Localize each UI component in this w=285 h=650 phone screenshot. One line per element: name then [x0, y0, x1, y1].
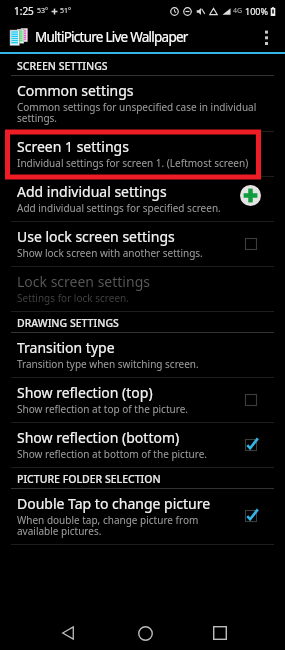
button[interactable]: Common settings — [0, 76, 285, 132]
staticText: Individual settings for screen 1. (Leftm… — [17, 156, 249, 170]
staticText: Transition type — [17, 338, 115, 357]
staticText: Common settings for unspecified case in … — [17, 100, 274, 125]
staticText: 1:25 — [14, 4, 34, 18]
staticText: Show lock screen with another settings. — [17, 246, 203, 260]
staticText: Show reflection at bottom of the picture… — [17, 447, 207, 461]
staticText: Show reflection (top) — [17, 383, 153, 402]
button[interactable]: Add individual settings — [0, 177, 285, 222]
staticText: Show reflection (bottom) — [17, 428, 180, 447]
button[interactable]: More options — [251, 22, 281, 52]
button[interactable]: Double Tap to change picture — [0, 489, 285, 545]
staticText: PICTURE FOLDER SELECTION — [17, 472, 161, 486]
button[interactable]: Use lock screen settings — [0, 222, 285, 267]
button[interactable]: Home — [126, 614, 164, 650]
staticText: Add individual settings — [17, 182, 167, 201]
staticText: Transition type when switching screen. — [17, 357, 199, 371]
staticText: Show reflection at top of the picture. — [17, 402, 188, 416]
staticText: 51° — [60, 6, 72, 16]
staticText: Settings for lock screen. — [17, 291, 129, 305]
button[interactable]: Screen 1 settings — [0, 132, 285, 177]
staticText: DRAWING SETTINGS — [17, 316, 119, 330]
button[interactable]: Back — [49, 614, 87, 650]
button[interactable]: Recents — [201, 614, 239, 650]
staticText: 100% — [245, 5, 268, 17]
staticText: Use lock screen settings — [17, 227, 175, 246]
staticText: Screen 1 settings — [17, 137, 129, 156]
staticText: Double Tap to change picture — [17, 494, 211, 513]
button[interactable]: Show reflection (bottom) — [0, 423, 285, 468]
staticText: Add individual settings for specified sc… — [17, 201, 221, 215]
staticText: MultiPicture Live Wallpaper — [35, 28, 188, 46]
button[interactable]: Show reflection (top) — [0, 378, 285, 423]
staticText: Lock screen settings — [17, 272, 150, 291]
button[interactable]: Transition type — [0, 333, 285, 378]
staticText: When double tap, change picture from ava… — [17, 513, 239, 538]
staticText: SCREEN SETTINGS — [17, 59, 108, 73]
button[interactable]: Lock screen settings — [0, 267, 285, 312]
staticText: Common settings — [17, 81, 134, 100]
staticText: 4G — [233, 6, 243, 16]
staticText: 53° — [37, 6, 49, 16]
